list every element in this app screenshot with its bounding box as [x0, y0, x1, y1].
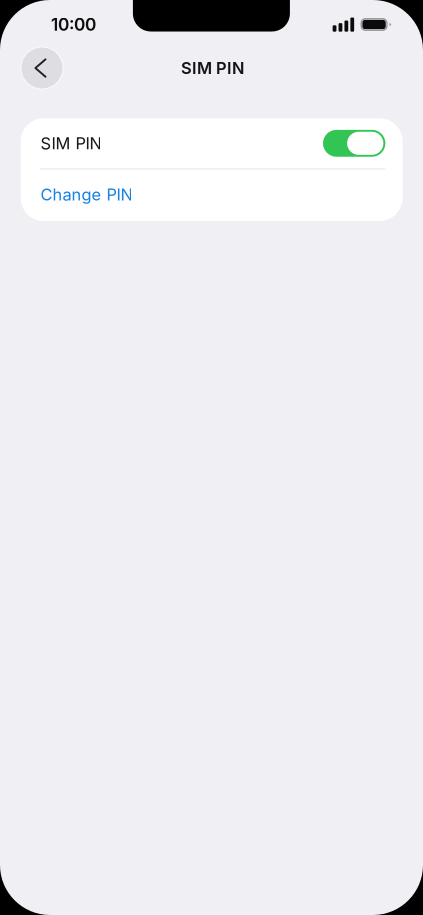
staticText: Change PIN — [40, 185, 132, 204]
button[interactable]: SIM PIN — [21, 118, 403, 168]
button[interactable]: Change PIN — [21, 168, 403, 221]
staticText: SIM PIN — [40, 133, 101, 153]
button[interactable]: Back — [20, 46, 63, 89]
staticText: 10:00 — [51, 14, 96, 35]
staticText: SIM PIN — [181, 58, 244, 78]
